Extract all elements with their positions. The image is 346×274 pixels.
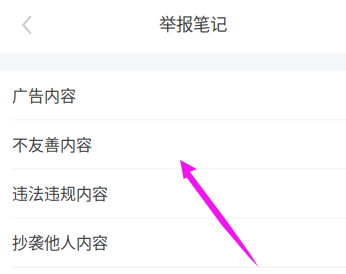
staticText: 违法违规内容	[12, 181, 108, 204]
button[interactable]: 抄袭他人内容	[0, 219, 346, 267]
staticText: 广告内容	[12, 83, 76, 106]
button[interactable]: 不友善内容	[0, 120, 346, 169]
button[interactable]: Back	[9, 5, 45, 45]
staticText: 不友善内容	[12, 132, 92, 155]
button[interactable]: 违法违规内容	[0, 169, 346, 218]
staticText: 抄袭他人内容	[12, 230, 108, 253]
staticText: 举报笔记	[159, 10, 227, 36]
button[interactable]: 广告内容	[0, 71, 346, 119]
